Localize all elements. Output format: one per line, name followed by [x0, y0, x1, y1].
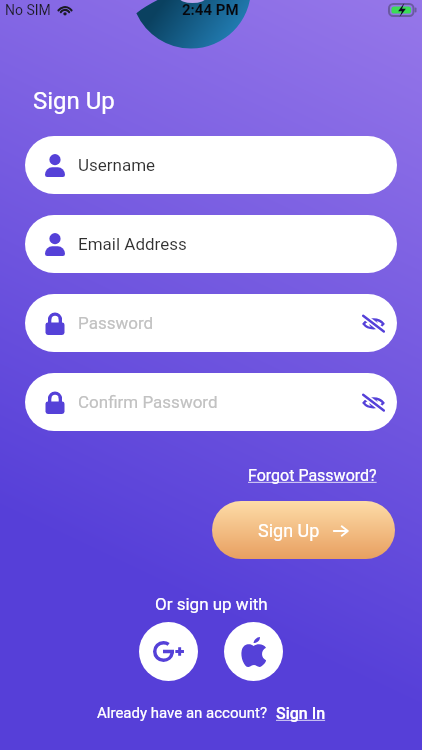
- button[interactable]: Toggle password visibility: [362, 393, 385, 412]
- staticText: 2:44 PM: [182, 1, 239, 19]
- staticText: Email Address: [78, 234, 187, 254]
- staticText: Confirm Password: [78, 392, 218, 412]
- staticText: Sign Up: [258, 520, 320, 541]
- staticText: Already have an account?: [97, 704, 268, 722]
- staticText: Password: [78, 313, 154, 333]
- button[interactable]: Confirm Password: [25, 373, 397, 431]
- staticText: Forgot Password?: [248, 466, 377, 485]
- button[interactable]: Toggle password visibility: [362, 314, 385, 333]
- button[interactable]: Sign Up: [212, 501, 395, 559]
- staticText: Username: [78, 155, 156, 175]
- staticText: No SIM: [5, 2, 51, 18]
- button[interactable]: Forgot Password?: [240, 461, 385, 490]
- button[interactable]: Email Address: [25, 215, 397, 273]
- button[interactable]: Username: [25, 136, 397, 194]
- staticText: Sign Up: [33, 87, 115, 115]
- staticText: Or sign up with: [155, 594, 268, 614]
- button[interactable]: Sign up with Apple: [224, 622, 283, 681]
- button[interactable]: Sign In: [276, 704, 326, 723]
- staticText: Sign In: [276, 704, 326, 723]
- button[interactable]: Sign up with Google: [139, 622, 198, 681]
- button[interactable]: Password: [25, 294, 397, 352]
